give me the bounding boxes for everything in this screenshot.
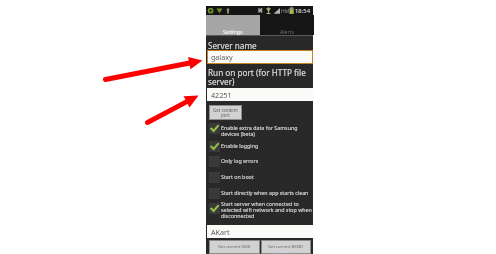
button[interactable]: Enable extra data for Samsung devices (b… bbox=[209, 123, 311, 140]
button[interactable]: galaxy bbox=[208, 51, 312, 63]
staticText: Enable logging bbox=[221, 142, 313, 149]
staticText: Start directly when app starts clean bbox=[221, 189, 313, 196]
staticText: Only log errors bbox=[221, 157, 313, 164]
staticText: Enable extra data for Samsung devices (b… bbox=[221, 124, 313, 137]
button[interactable]: AKart bbox=[207, 225, 313, 238]
staticText: Get current SSID bbox=[218, 244, 251, 250]
button[interactable]: Get random port bbox=[210, 106, 241, 119]
button[interactable]: Get current SSID bbox=[210, 241, 259, 253]
button[interactable]: Only log errors bbox=[209, 156, 311, 168]
button[interactable]: Settings bbox=[206, 15, 260, 35]
button[interactable]: Enable logging bbox=[209, 141, 311, 153]
staticText: Get random port bbox=[213, 107, 238, 119]
button[interactable]: Get current BSSID bbox=[262, 241, 310, 253]
staticText: Start server when connected to selected … bbox=[221, 200, 313, 219]
button[interactable]: 42251 bbox=[207, 88, 313, 101]
button[interactable]: Start directly when app starts clean bbox=[209, 188, 311, 200]
other: Annotation arrows bbox=[0, 0, 496, 254]
staticText: Start on boot bbox=[221, 173, 313, 180]
staticText: Server name bbox=[208, 40, 257, 51]
staticText: Get current BSSID bbox=[268, 244, 304, 250]
staticText: HM bbox=[281, 8, 290, 15]
button[interactable]: Start on boot bbox=[209, 172, 311, 184]
button[interactable]: Start server when connected to selected … bbox=[209, 199, 311, 220]
staticText: AKart bbox=[211, 227, 230, 237]
staticText: Run on port (for HTTP file server) bbox=[208, 67, 312, 87]
staticText: Alerts bbox=[280, 29, 294, 36]
staticText: 42251 bbox=[211, 90, 232, 100]
staticText: 18:54 bbox=[295, 7, 311, 15]
staticText: Settings bbox=[223, 29, 243, 36]
staticText: ahuwalia bbox=[272, 250, 296, 254]
button[interactable]: Alerts bbox=[260, 15, 314, 35]
staticText: galaxy bbox=[211, 52, 233, 62]
